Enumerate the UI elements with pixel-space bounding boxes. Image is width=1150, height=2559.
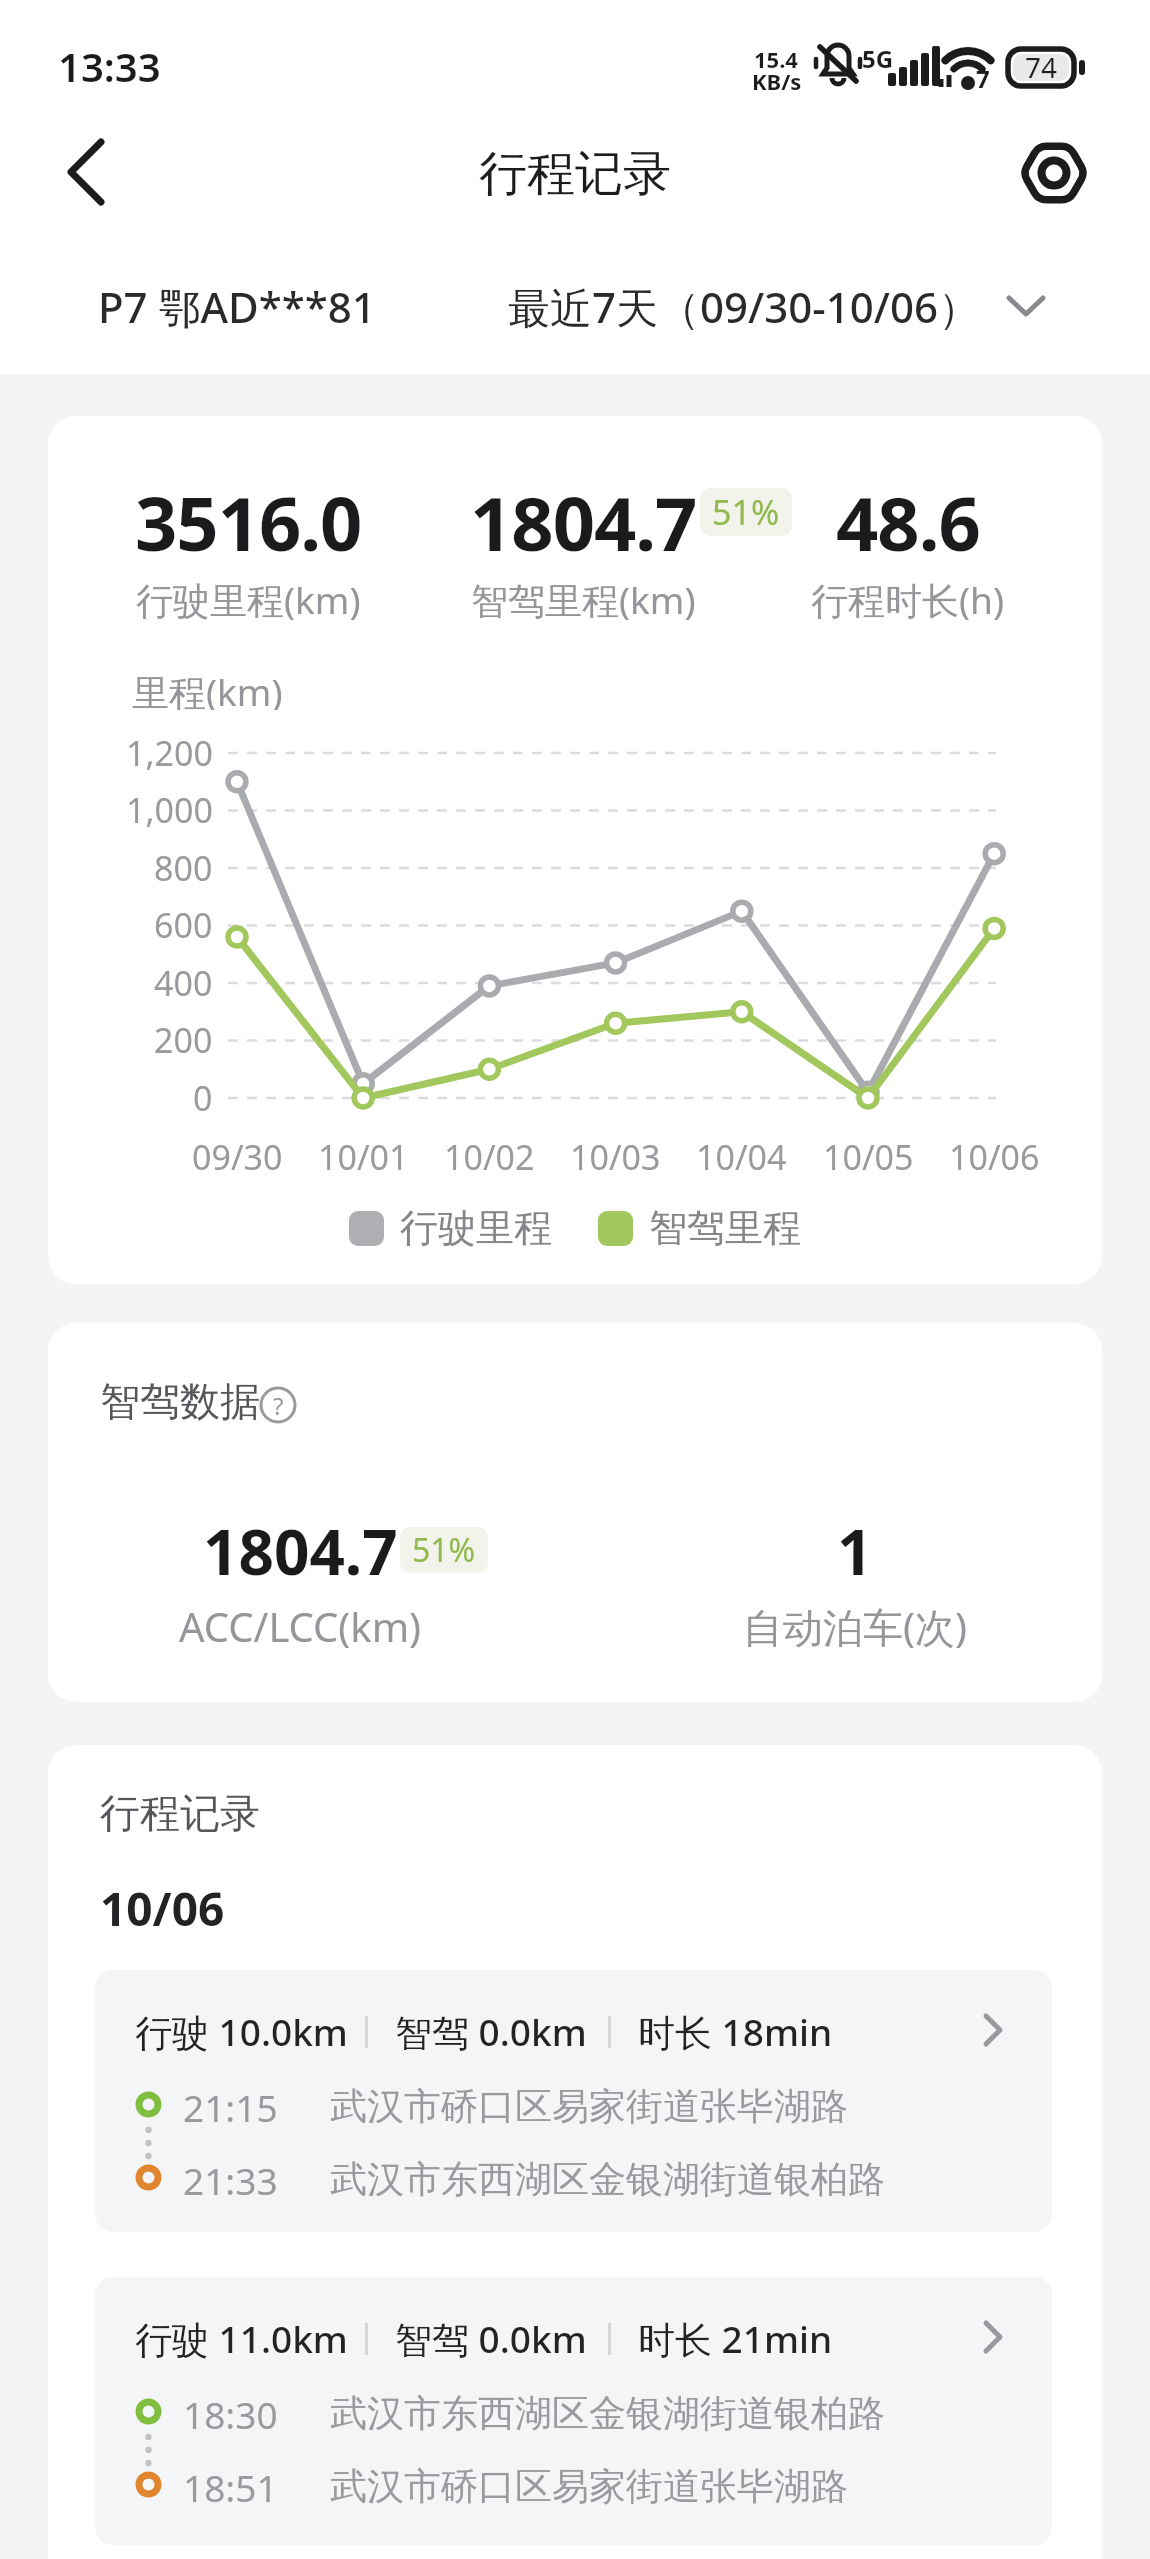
staticText: 7	[976, 62, 990, 88]
staticText: P7 鄂AD***81	[98, 278, 376, 330]
staticText: 3516.0	[135, 472, 362, 564]
button[interactable]: 行驶 10.0km	[95, 1970, 1052, 2232]
staticText: 18:51	[183, 2462, 278, 2510]
staticText: 10/02	[444, 1134, 535, 1180]
staticText: 行驶里程	[400, 1204, 552, 1252]
staticText: 51%	[712, 489, 780, 535]
staticText: 武汉市东西湖区金银湖街道银柏路	[330, 2390, 885, 2437]
staticText: 74	[1025, 48, 1058, 86]
staticText: 10/01	[318, 1134, 409, 1180]
staticText: 5G	[862, 42, 894, 68]
staticText: KB/s	[752, 66, 802, 90]
staticText: 行程时长(h)	[811, 574, 1005, 620]
staticText: 智驾 0.0km	[395, 2313, 587, 2363]
staticText: 10/06	[100, 1877, 225, 1935]
button[interactable]: 行驶 11.0km	[95, 2277, 1052, 2545]
staticText: 行程记录	[100, 1788, 260, 1838]
staticText: 武汉市硚口区易家街道张毕湖路	[330, 2463, 848, 2510]
staticText: 自动泊车(次)	[743, 1599, 967, 1649]
staticText: ACC/LCC(km)	[179, 1599, 422, 1649]
staticText: 行程记录	[479, 144, 671, 202]
staticText: 智驾 0.0km	[395, 2006, 587, 2056]
staticText: 10/05	[823, 1134, 914, 1180]
staticText: 200	[154, 1017, 213, 1063]
staticText: ?	[273, 1389, 284, 1422]
staticText: 1,000	[126, 787, 213, 833]
staticText: 51%	[412, 1528, 476, 1572]
button[interactable]	[1012, 131, 1096, 215]
staticText: 1	[837, 1509, 873, 1593]
staticText: 18:30	[183, 2389, 278, 2437]
staticText: 里程(km)	[132, 666, 283, 710]
staticText: 1804.7	[470, 472, 697, 564]
staticText: 0	[193, 1075, 213, 1121]
staticText: 行驶里程(km)	[136, 574, 361, 620]
staticText: 智驾数据	[100, 1376, 260, 1426]
staticText: 09/30	[192, 1134, 283, 1180]
staticText: 时长 21min	[638, 2313, 833, 2363]
staticText: 行驶 10.0km	[135, 2006, 348, 2056]
staticText: 1804.7	[203, 1509, 398, 1593]
staticText: 10/03	[570, 1134, 661, 1180]
staticText: 48.6	[836, 472, 980, 564]
staticText: 600	[154, 902, 213, 948]
staticText: 800	[154, 845, 213, 891]
staticText: 21:33	[183, 2155, 278, 2203]
staticText: 智驾里程	[649, 1204, 801, 1252]
button[interactable]: 最近7天（09/30-10/06）	[495, 268, 1065, 340]
staticText: 10/06	[949, 1134, 1040, 1180]
staticText: 13:33	[58, 39, 161, 93]
staticText: 智驾里程(km)	[471, 574, 696, 620]
staticText: 400	[154, 960, 213, 1006]
staticText: 最近7天（09/30-10/06）	[508, 278, 981, 330]
staticText: 武汉市东西湖区金银湖街道银柏路	[330, 2156, 885, 2203]
staticText: 15.4	[754, 44, 798, 68]
staticText: 行驶 11.0km	[135, 2313, 348, 2363]
button[interactable]	[45, 132, 125, 212]
staticText: 武汉市硚口区易家街道张毕湖路	[330, 2083, 848, 2130]
staticText: 10/04	[696, 1134, 787, 1180]
staticText: 时长 18min	[638, 2006, 833, 2056]
staticText: 21:15	[183, 2082, 278, 2130]
staticText: 1,200	[126, 730, 213, 776]
